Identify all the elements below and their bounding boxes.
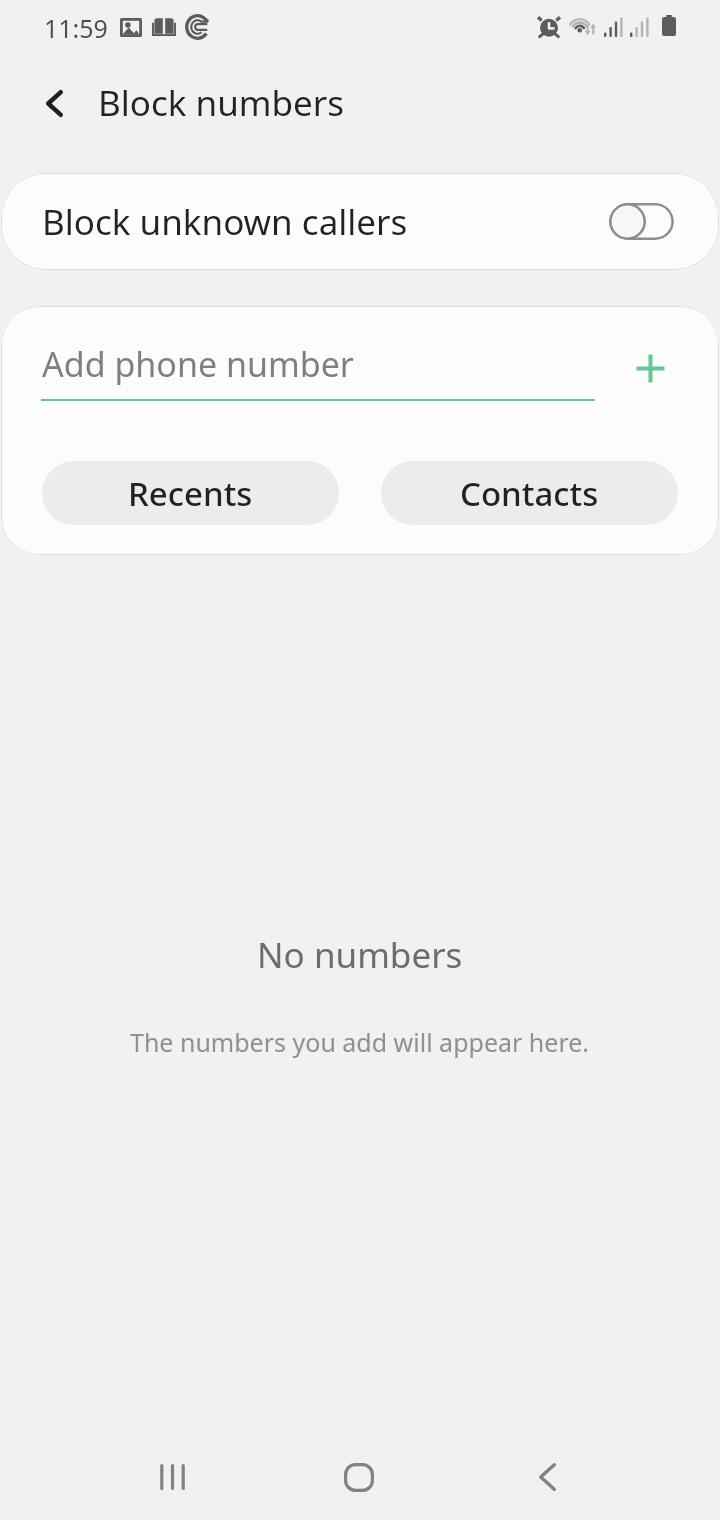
staticText: Contacts [460, 471, 599, 516]
button[interactable]: Block unknown callers [1, 173, 719, 270]
staticText: 11:59 [44, 11, 108, 45]
button[interactable]: Contacts [381, 461, 678, 525]
button[interactable]: Add number [624, 342, 676, 394]
button[interactable]: Recent apps [112, 1429, 232, 1520]
button[interactable]: Home [299, 1429, 419, 1520]
staticText: Block unknown callers [42, 198, 408, 246]
staticText: No numbers [257, 931, 463, 979]
button[interactable]: Recents [42, 461, 339, 525]
staticText: Block numbers [98, 79, 345, 127]
staticText: The numbers you add will appear here. [130, 1025, 590, 1059]
staticText: Recents [128, 471, 253, 516]
staticText: Add phone number [42, 341, 354, 387]
button[interactable]: Navigate up [26, 76, 82, 130]
button[interactable]: Block unknown callers toggle, off [609, 203, 674, 240]
button[interactable]: Back [487, 1429, 607, 1520]
